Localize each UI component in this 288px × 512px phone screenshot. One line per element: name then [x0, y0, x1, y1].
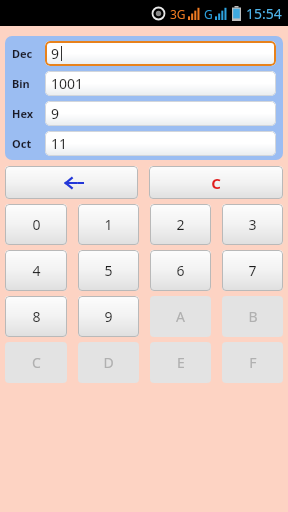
button[interactable]: C: [149, 166, 283, 199]
staticText: 1001: [51, 74, 84, 93]
button[interactable]: 5: [78, 250, 139, 291]
staticText: 2: [176, 215, 185, 234]
staticText: 3: [248, 215, 257, 234]
button[interactable]: E: [150, 342, 211, 383]
button[interactable]: D: [78, 342, 139, 383]
staticText: C: [32, 353, 41, 372]
button[interactable]: [5, 166, 138, 199]
staticText: D: [103, 353, 114, 372]
button[interactable]: 4: [5, 250, 67, 291]
button[interactable]: 0: [5, 204, 67, 245]
staticText: F: [249, 353, 257, 372]
staticText: 7: [248, 261, 257, 280]
staticText: 0: [32, 215, 41, 234]
staticText: E: [177, 353, 185, 372]
staticText: 6: [176, 261, 185, 280]
staticText: 9: [51, 104, 60, 123]
button[interactable]: 7: [222, 250, 283, 291]
staticText: 5: [104, 261, 113, 280]
staticText: B: [248, 307, 258, 326]
staticText: 3G: [170, 6, 186, 22]
button[interactable]: 2: [150, 204, 211, 245]
staticText: A: [176, 307, 185, 326]
button[interactable]: F: [222, 342, 283, 383]
button[interactable]: B: [222, 296, 283, 337]
staticText: Hex: [12, 106, 34, 121]
button[interactable]: 11: [45, 131, 276, 156]
button[interactable]: 9: [45, 41, 276, 66]
staticText: G: [204, 6, 213, 22]
staticText: C: [211, 173, 221, 193]
staticText: 9: [51, 44, 60, 63]
staticText: Dec: [12, 46, 33, 61]
button[interactable]: 9: [78, 296, 139, 337]
button[interactable]: C: [5, 342, 67, 383]
staticText: 11: [51, 134, 68, 153]
button[interactable]: 1: [78, 204, 139, 245]
button[interactable]: A: [150, 296, 211, 337]
button[interactable]: 9: [45, 101, 276, 126]
other: Backspace: [5, 166, 138, 199]
staticText: 15:54: [246, 4, 282, 23]
button[interactable]: 8: [5, 296, 67, 337]
staticText: 4: [32, 261, 41, 280]
staticText: 8: [32, 307, 41, 326]
staticText: 1: [104, 215, 113, 234]
button[interactable]: 1001: [45, 71, 276, 96]
staticText: Oct: [12, 136, 32, 151]
button[interactable]: 6: [150, 250, 211, 291]
staticText: Bin: [12, 76, 30, 91]
staticText: 9: [104, 307, 113, 326]
button[interactable]: 3: [222, 204, 283, 245]
